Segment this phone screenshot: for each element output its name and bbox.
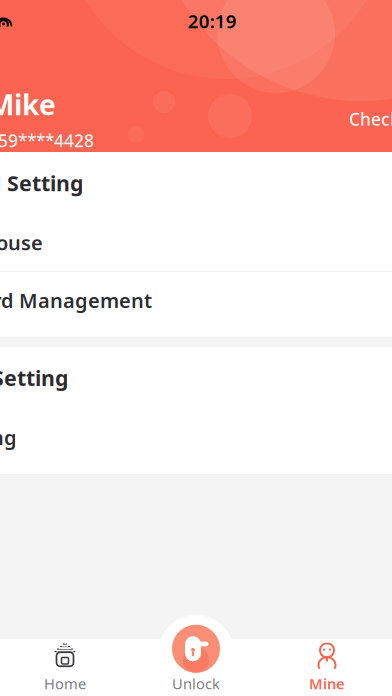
button[interactable]: My House <box>0 214 392 271</box>
staticText: Mine <box>309 674 345 693</box>
button[interactable]: Record Management <box>0 272 392 329</box>
staticText: Home <box>44 674 86 693</box>
staticText: 159****4428 <box>0 129 94 152</box>
button[interactable]: Mine <box>262 640 392 696</box>
staticText: My House <box>0 229 43 256</box>
staticText: System Setting <box>0 364 68 392</box>
staticText: Check and Edit <box>349 107 392 130</box>
button[interactable]: Setting <box>0 409 392 466</box>
button[interactable]: Home <box>0 640 130 696</box>
staticText: 20:19 <box>188 9 237 33</box>
staticText: Personal Setting <box>0 169 83 197</box>
staticText: Mike <box>0 86 56 123</box>
staticText: Setting <box>0 424 17 451</box>
button[interactable]: Check and Edit <box>349 97 392 140</box>
staticText: Unlock <box>172 674 220 693</box>
button[interactable]: Unlock <box>130 631 262 696</box>
staticText: Record Management <box>0 287 152 314</box>
